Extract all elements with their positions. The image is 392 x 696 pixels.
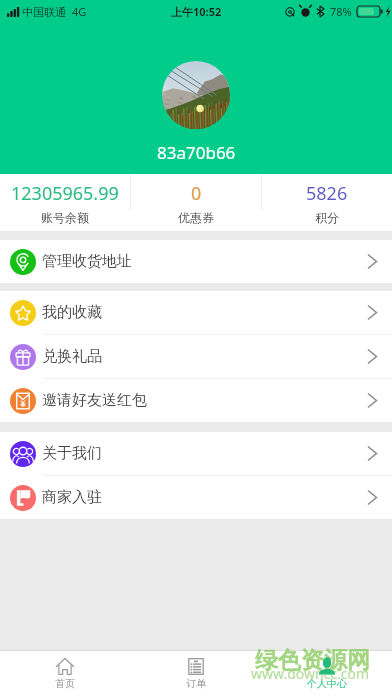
staticText: 83a70b66 <box>157 141 236 164</box>
staticText: 邀请好友送红包 <box>42 391 147 410</box>
button[interactable]: 12305965.99 <box>0 174 130 225</box>
staticText: 78% <box>330 4 352 19</box>
staticText: 订单 <box>186 677 206 690</box>
staticText: 个人中心 <box>307 677 347 690</box>
staticText: 首页 <box>55 677 75 690</box>
staticText: 上午10:52 <box>171 4 222 19</box>
button[interactable]: 关于我们 <box>0 432 392 475</box>
staticText: www.downcc.com <box>251 664 370 683</box>
staticText: 兑换礼品 <box>42 347 102 366</box>
button[interactable]: 兑换礼品 <box>0 335 392 378</box>
staticText: 账号余额 <box>41 210 89 225</box>
button[interactable]: 邀请好友送红包 <box>0 379 392 422</box>
staticText: 积分 <box>315 210 339 225</box>
staticText: 优惠券 <box>178 210 214 225</box>
button[interactable]: 个人中心 <box>261 651 392 690</box>
staticText: 12305965.99 <box>11 181 119 206</box>
staticText: 绿色资源网 <box>255 646 370 675</box>
staticText: 中国联通 <box>22 5 66 19</box>
staticText: 我的收藏 <box>42 303 102 322</box>
staticText: 4G <box>72 4 87 19</box>
staticText: 管理收货地址 <box>42 252 132 271</box>
button[interactable]: 首页 <box>0 651 130 690</box>
button[interactable]: 商家入驻 <box>0 476 392 519</box>
button[interactable]: 5826 <box>262 174 392 225</box>
staticText: 商家入驻 <box>42 488 102 507</box>
button[interactable]: 管理收货地址 <box>0 240 392 283</box>
staticText: 5826 <box>306 181 348 206</box>
button[interactable]: 0 <box>131 174 261 225</box>
staticText: 关于我们 <box>42 444 102 463</box>
button[interactable]: 订单 <box>130 651 261 690</box>
staticText: 0 <box>191 181 202 206</box>
button[interactable]: 我的收藏 <box>0 291 392 334</box>
